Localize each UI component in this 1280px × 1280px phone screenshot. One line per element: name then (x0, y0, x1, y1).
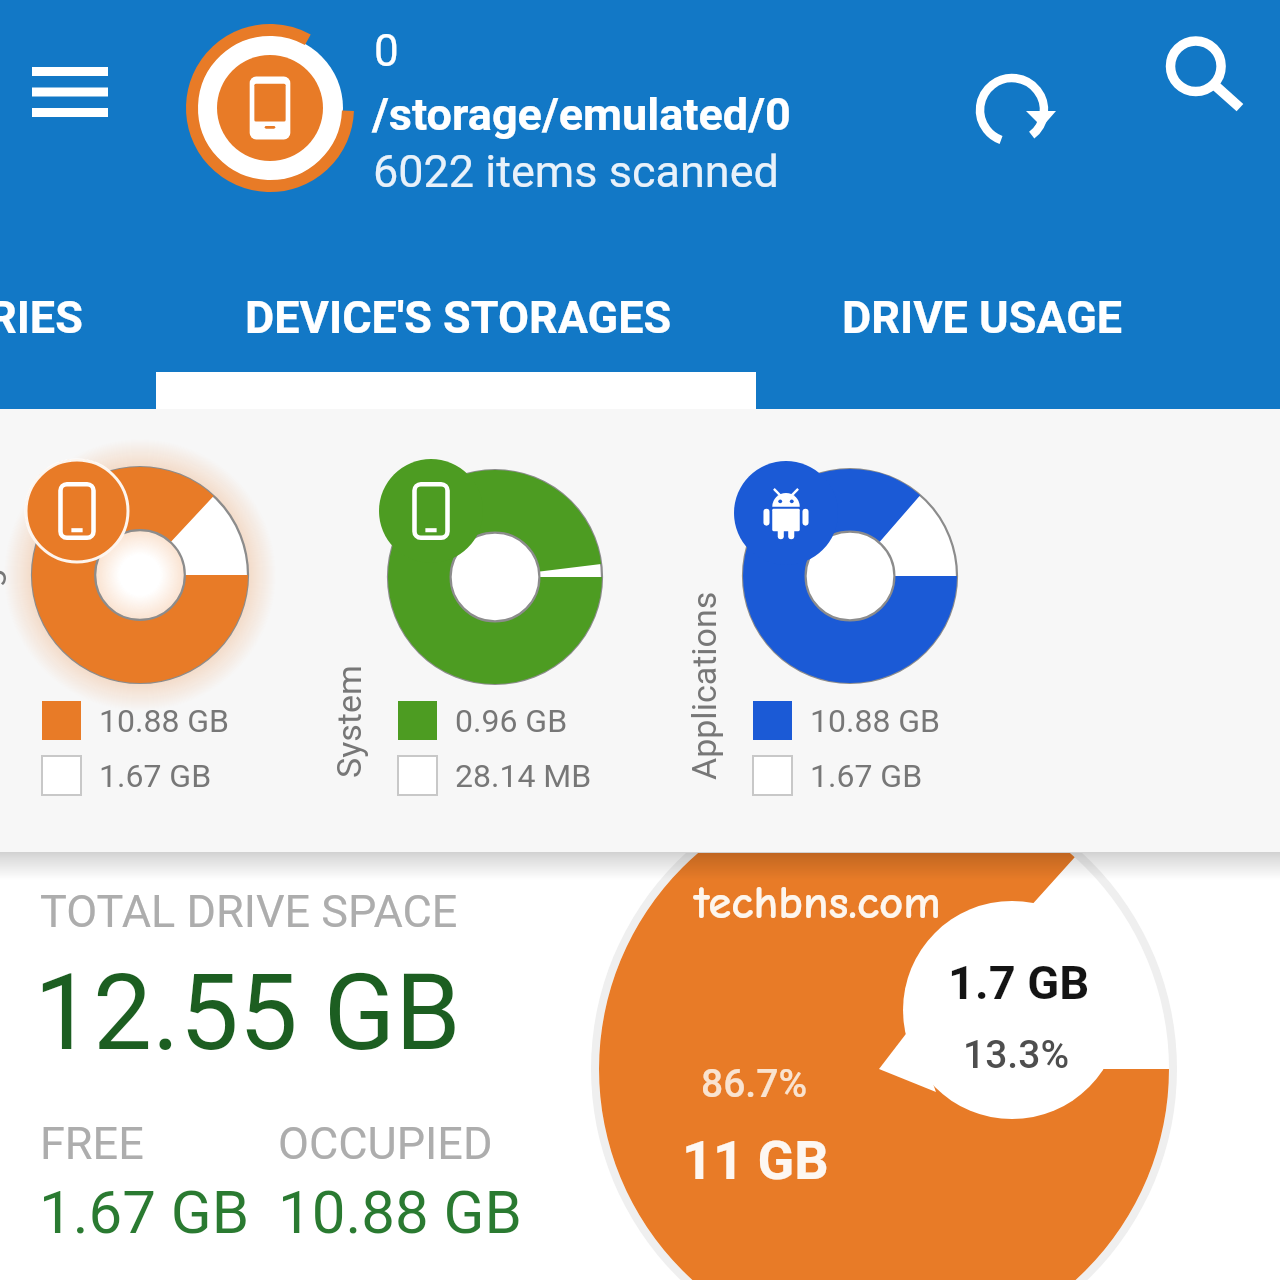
staticText: 28.14 MB (455, 757, 592, 795)
button[interactable]: DEVICE'S STORAGES (245, 274, 672, 360)
staticText: Internal Storage (0, 550, 7, 790)
staticText: 0.96 GB (455, 702, 568, 740)
button[interactable]: Refresh (950, 48, 1074, 172)
staticText: FREE (40, 1117, 144, 1170)
staticText: 11 GB (682, 1129, 829, 1192)
button[interactable]: RIES (0, 274, 83, 360)
button[interactable]: Search (1143, 18, 1267, 142)
staticText: RIES (0, 291, 83, 344)
staticText: 10.88 GB (810, 702, 941, 740)
staticText: DEVICE'S STORAGES (245, 291, 672, 344)
staticText: 1.7 GB (948, 955, 1090, 1010)
staticText: DRIVE USAGE (842, 291, 1123, 344)
staticText: 1.67 GB (810, 757, 923, 795)
staticText: Applications (684, 591, 724, 780)
staticText: 10.88 GB (278, 1177, 522, 1247)
staticText: System (329, 665, 369, 778)
button[interactable]: Open navigation menu (8, 40, 132, 144)
staticText: OCCUPIED (278, 1117, 493, 1170)
staticText: 13.3% (963, 1032, 1070, 1078)
staticText: 12.55 GB (34, 952, 461, 1075)
staticText: TOTAL DRIVE SPACE (40, 885, 458, 938)
staticText: 1.67 GB (99, 757, 212, 795)
staticText: 0 (374, 25, 399, 77)
staticText: 6022 items scanned (373, 145, 779, 198)
staticText: 1.67 GB (39, 1177, 250, 1247)
button[interactable]: DRIVE USAGE (842, 274, 1123, 360)
staticText: techbns.com (694, 876, 941, 930)
staticText: /storage/emulated/0 (372, 88, 791, 141)
staticText: 86.7% (701, 1061, 808, 1107)
staticText: 10.88 GB (99, 702, 230, 740)
